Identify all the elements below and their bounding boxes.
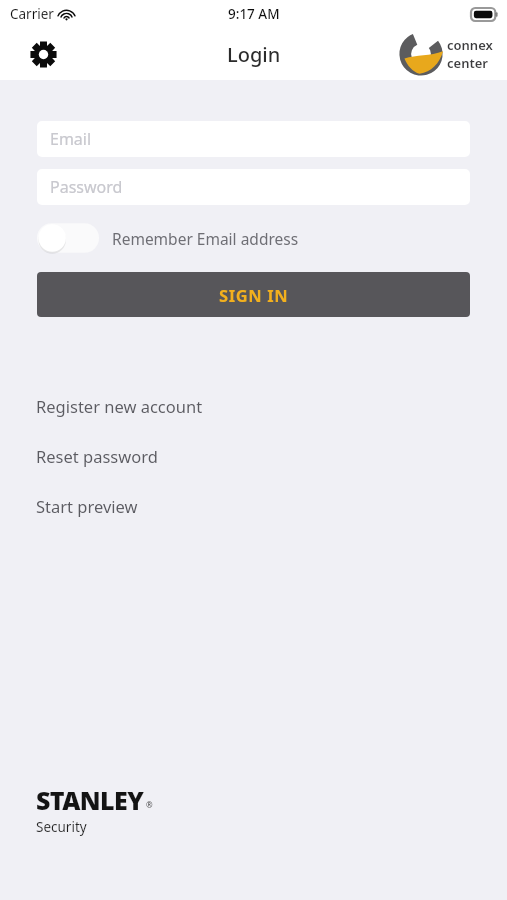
staticText: Password	[50, 176, 123, 198]
button[interactable]: Connex Center	[398, 32, 499, 76]
staticText: STANLEY	[36, 783, 144, 817]
staticText: Register new account	[36, 395, 203, 417]
staticText: center	[447, 54, 488, 72]
staticText: Login	[227, 41, 281, 68]
staticText: Start preview	[36, 495, 138, 517]
staticText: ®	[146, 799, 153, 810]
staticText: Remember Email address	[112, 228, 299, 249]
button[interactable]: Start preview	[0, 492, 507, 520]
button[interactable]: Register new account	[0, 392, 507, 420]
staticText: Email	[50, 128, 92, 150]
staticText: Security	[36, 818, 87, 836]
button[interactable]: Settings	[26, 37, 60, 71]
staticText: connex	[447, 36, 493, 54]
button[interactable]: Reset password	[0, 442, 507, 470]
button[interactable]: Password	[37, 169, 470, 205]
staticText: SIGN IN	[219, 284, 289, 306]
staticText: Carrier	[10, 5, 54, 23]
staticText: 9:17 AM	[228, 5, 280, 23]
staticText: Reset password	[36, 445, 158, 467]
button[interactable]: Remember Email address	[37, 222, 299, 254]
button[interactable]: Email	[37, 121, 470, 157]
button[interactable]: SIGN IN	[37, 272, 470, 317]
